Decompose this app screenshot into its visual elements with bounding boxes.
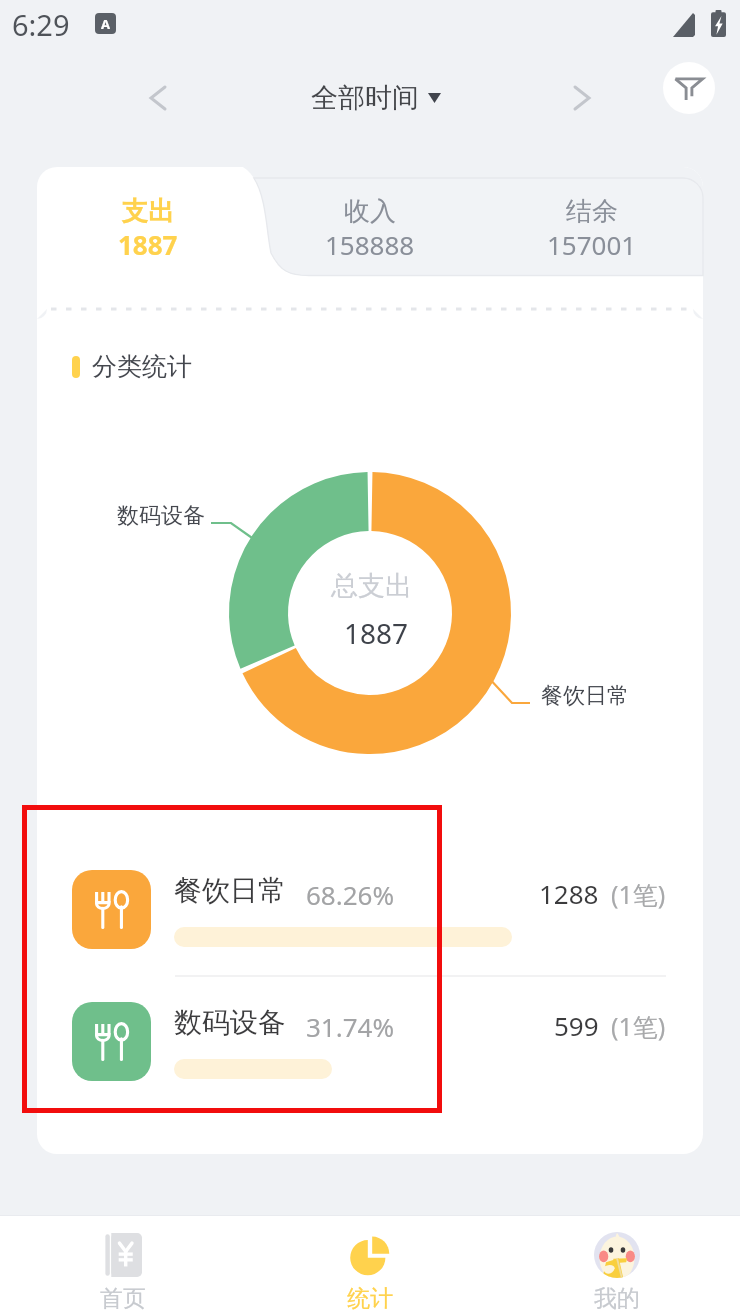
staticText: 31.74% bbox=[306, 1009, 395, 1044]
button[interactable]: 餐饮日常 bbox=[37, 870, 703, 982]
staticText: 统计 bbox=[347, 1284, 393, 1313]
staticText: 分类统计 bbox=[92, 351, 192, 382]
button[interactable]: 统计 bbox=[246, 1216, 493, 1315]
staticText: 餐饮日常 bbox=[174, 873, 286, 908]
staticText: 收入 bbox=[344, 195, 396, 228]
button[interactable]: 首页 bbox=[0, 1216, 246, 1315]
staticText: 1887 bbox=[344, 614, 409, 652]
button[interactable]: Previous period bbox=[134, 74, 182, 122]
staticText: 首页 bbox=[100, 1284, 146, 1313]
staticText: 总支出 bbox=[331, 569, 412, 603]
staticText: 餐饮日常 bbox=[541, 682, 629, 710]
staticText: 全部时间 bbox=[311, 81, 419, 115]
button[interactable]: Next period bbox=[558, 74, 606, 122]
button[interactable]: 我的 bbox=[493, 1216, 740, 1315]
staticText: 599 bbox=[554, 1008, 599, 1043]
button[interactable]: 数码设备 bbox=[37, 1002, 703, 1114]
button[interactable]: 收入 bbox=[259, 167, 481, 276]
staticText: 68.26% bbox=[306, 877, 395, 912]
staticText: A bbox=[101, 15, 110, 33]
staticText: (1笔) bbox=[611, 877, 666, 911]
staticText: 1887 bbox=[118, 227, 178, 262]
staticText: 结余 bbox=[566, 195, 618, 228]
staticText: (1笔) bbox=[611, 1009, 666, 1043]
button[interactable]: Filter bbox=[663, 62, 715, 114]
staticText: 数码设备 bbox=[174, 1005, 286, 1040]
staticText: 1288 bbox=[539, 876, 599, 911]
staticText: 支出 bbox=[122, 195, 174, 228]
staticText: 158888 bbox=[325, 227, 415, 262]
staticText: 我的 bbox=[594, 1284, 640, 1313]
staticText: 数码设备 bbox=[117, 502, 205, 530]
button[interactable]: 结余 bbox=[481, 167, 703, 276]
button[interactable]: 支出 bbox=[37, 167, 259, 276]
staticText: 157001 bbox=[547, 227, 637, 262]
staticText: 6:29 bbox=[12, 5, 70, 44]
